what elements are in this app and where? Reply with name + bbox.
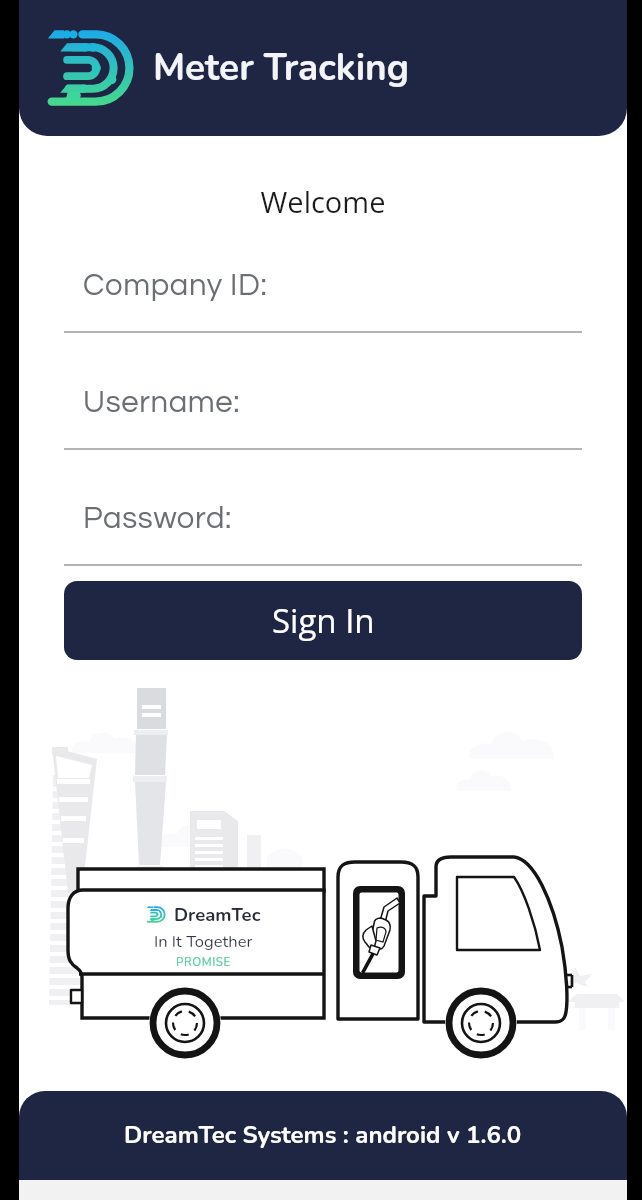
button[interactable]: Username: [64, 387, 582, 450]
staticText: Password: [83, 503, 232, 535]
staticText: In It Together [154, 930, 253, 953]
staticText: Welcome [19, 182, 627, 221]
staticText: DreamTec [174, 902, 261, 927]
staticText: DreamTec Systems : android v 1.6.0 [124, 1119, 522, 1152]
button[interactable]: Password: [64, 503, 582, 566]
staticText: Company ID: [83, 270, 268, 302]
staticText: Username: [83, 387, 241, 419]
button[interactable]: Sign In [64, 581, 582, 660]
staticText: Sign In [272, 598, 375, 643]
staticText: Meter Tracking [153, 43, 410, 93]
button[interactable]: Company ID: [64, 270, 582, 333]
staticText: PROMISE [176, 954, 231, 970]
